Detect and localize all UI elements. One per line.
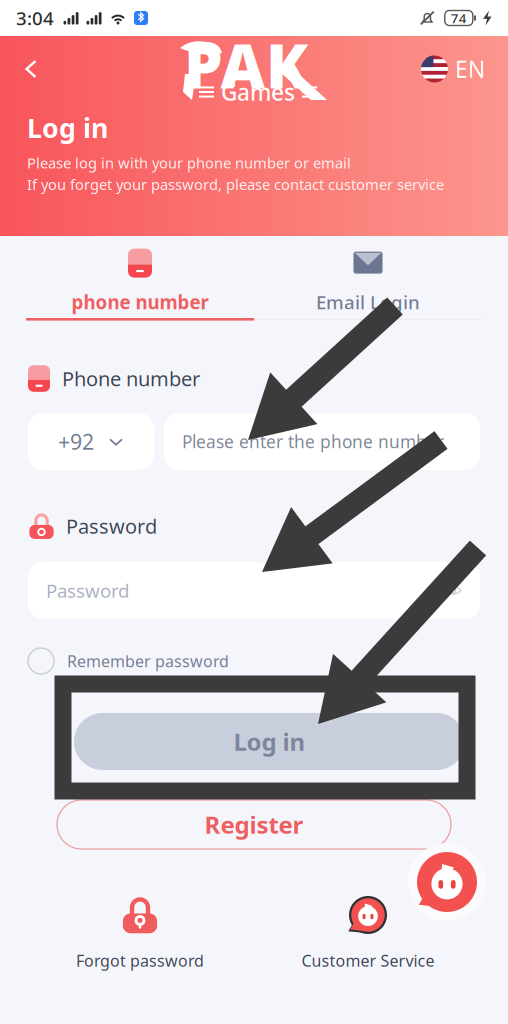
button[interactable]: Customer Service — [288, 896, 448, 971]
button[interactable]: Please enter the phone number — [164, 413, 480, 470]
staticText: Forgot password — [76, 950, 204, 971]
staticText: Email Login — [316, 290, 420, 314]
button[interactable]: Forgot password — [60, 896, 220, 971]
staticText: Password — [46, 578, 129, 603]
staticText: Log in — [27, 110, 108, 145]
staticText: Remember password — [67, 650, 229, 672]
button[interactable]: phone number — [26, 244, 254, 322]
staticText: If you forget your password, please cont… — [27, 174, 444, 194]
staticText: Log in — [233, 726, 305, 757]
staticText: Games — [221, 77, 295, 107]
button[interactable]: EN — [421, 48, 485, 90]
staticText: EN — [455, 54, 485, 84]
staticText: Phone number — [62, 365, 200, 392]
button[interactable]: Email Login — [254, 244, 482, 322]
staticText: Customer Service — [301, 950, 434, 971]
staticText: PAK — [184, 24, 308, 105]
staticText: Register — [204, 809, 303, 840]
button[interactable]: Remember password — [26, 646, 326, 676]
staticText: phone number — [71, 290, 208, 314]
staticText: +92 — [58, 427, 94, 456]
button[interactable]: +92 — [28, 413, 154, 470]
button[interactable]: Password — [28, 562, 480, 619]
button[interactable]: Log in — [74, 713, 465, 770]
staticText: 74 — [451, 9, 467, 27]
staticText: Please log in with your phone number or … — [27, 153, 351, 172]
staticText: 3:04 — [16, 6, 54, 30]
button[interactable]: Back — [8, 46, 54, 92]
staticText: Please enter the phone number — [182, 430, 444, 453]
button[interactable]: Register — [57, 800, 451, 849]
staticText: Password — [66, 513, 157, 539]
